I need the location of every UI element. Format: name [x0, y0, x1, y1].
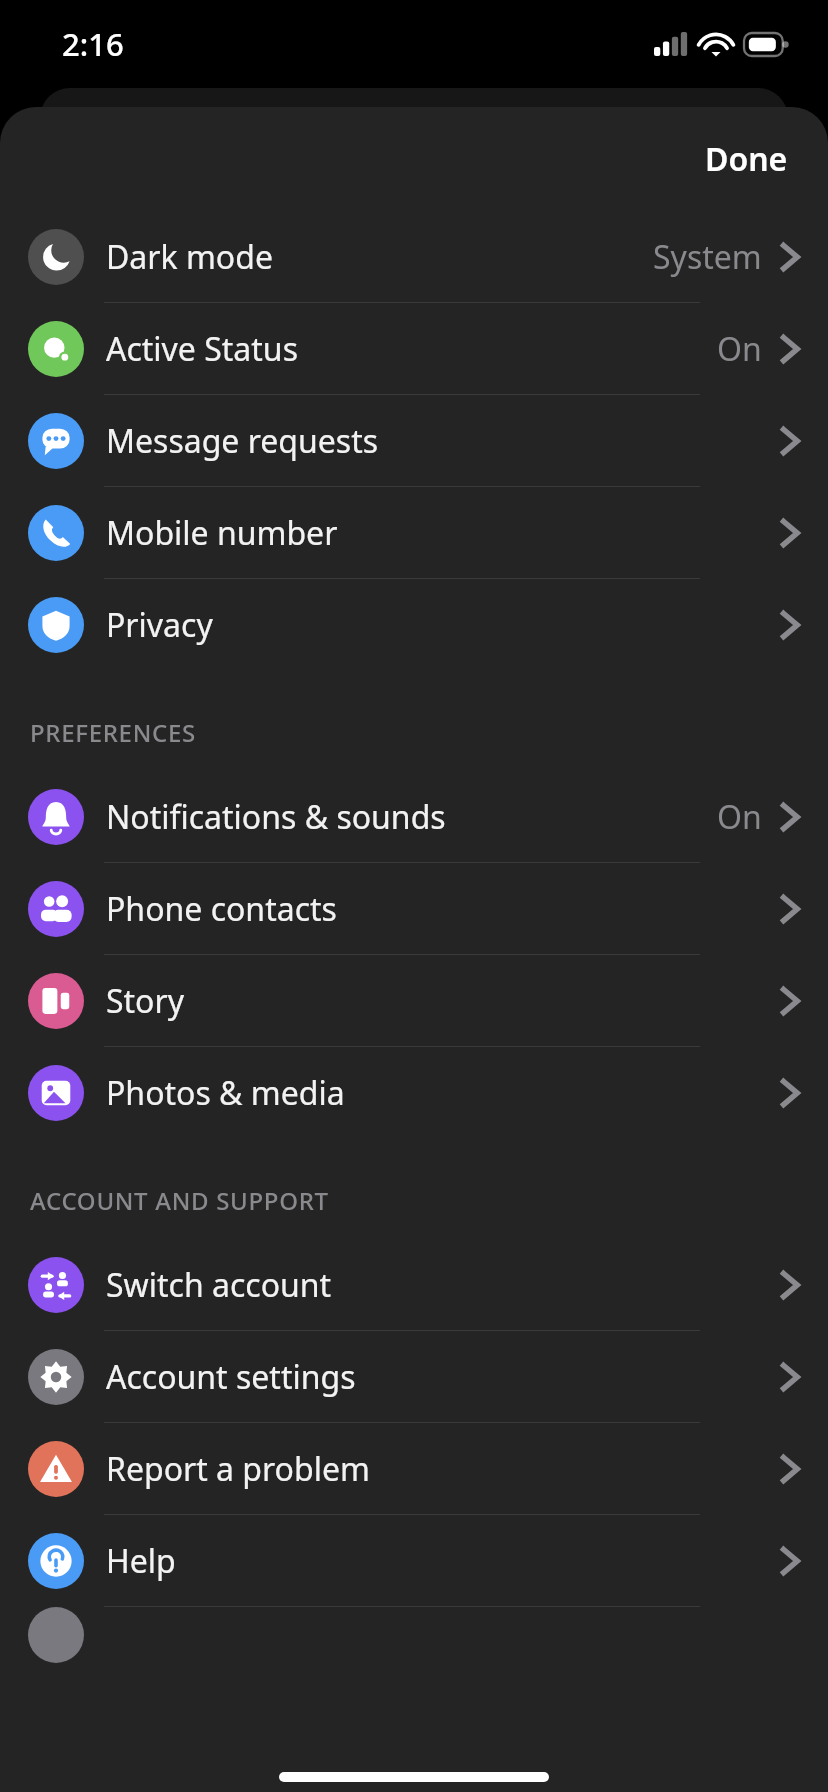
button[interactable]: Story — [0, 955, 828, 1046]
button[interactable]: Privacy — [0, 579, 828, 670]
button[interactable]: Phone contacts — [0, 863, 828, 954]
staticText: Switch account — [106, 1263, 332, 1307]
staticText: 2:16 — [62, 23, 124, 65]
staticText: Dark mode — [106, 235, 273, 279]
staticText: Phone contacts — [106, 887, 337, 931]
staticText: On — [717, 795, 762, 839]
staticText: Done — [705, 137, 788, 181]
staticText: On — [717, 327, 762, 371]
staticText: Account settings — [106, 1355, 356, 1399]
button[interactable]: Dark mode — [0, 211, 828, 302]
button[interactable]: Notifications & sounds — [0, 771, 828, 862]
staticText: Mobile number — [106, 511, 338, 555]
button[interactable]: Mobile number — [0, 487, 828, 578]
button[interactable]: Message requests — [0, 395, 828, 486]
staticText: PREFERENCES — [30, 716, 196, 749]
staticText: Help — [106, 1539, 176, 1583]
staticText: ACCOUNT AND SUPPORT — [30, 1184, 329, 1217]
staticText: Notifications & sounds — [106, 795, 446, 839]
button[interactable]: Switch account — [0, 1239, 828, 1330]
button[interactable]: Account settings — [0, 1331, 828, 1422]
staticText: Photos & media — [106, 1071, 345, 1115]
button[interactable]: Photos & media — [0, 1047, 828, 1138]
button[interactable]: Help — [0, 1515, 828, 1606]
staticText: Report a problem — [106, 1447, 370, 1491]
staticText: System — [653, 235, 762, 279]
staticText: Privacy — [106, 603, 213, 647]
button[interactable]: Active Status — [0, 303, 828, 394]
staticText: Message requests — [106, 419, 379, 463]
button[interactable]: Done — [683, 127, 810, 191]
staticText: Active Status — [106, 327, 298, 371]
button[interactable]: Report a problem — [0, 1423, 828, 1514]
staticText: Story — [106, 979, 185, 1023]
